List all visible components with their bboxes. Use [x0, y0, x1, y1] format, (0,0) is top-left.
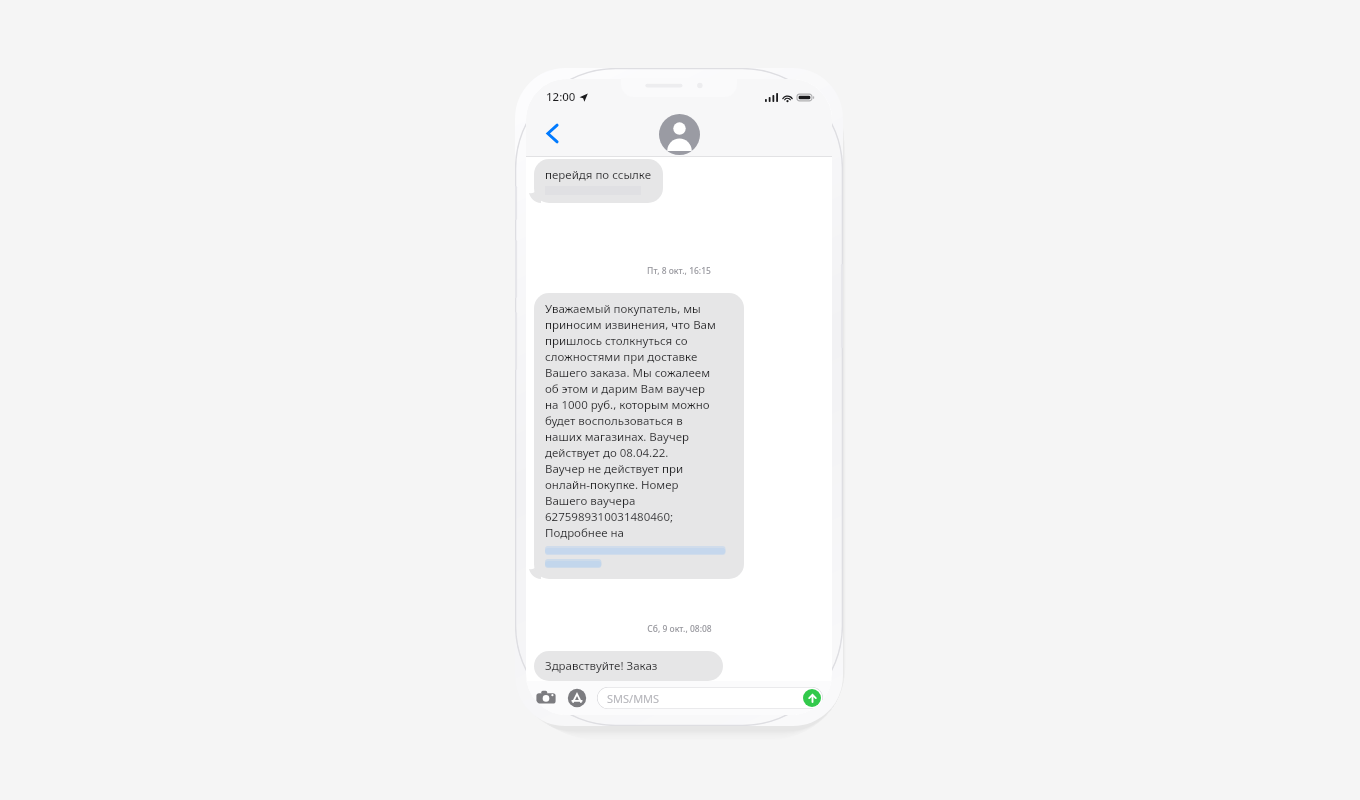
- button[interactable]: Уважаемый покупатель, мы приносим извине…: [545, 301, 733, 571]
- staticText: SMS/MMS: [607, 691, 660, 706]
- button[interactable]: SMS/MMS: [597, 687, 823, 709]
- button[interactable]: Camera: [535, 687, 557, 709]
- button[interactable]: Здравствуйте! Заказ: [545, 658, 712, 674]
- staticText: Здравствуйте! Заказ: [545, 658, 658, 674]
- staticText: Пт, 8 окт., 16:15: [647, 265, 711, 277]
- button[interactable]: Contact: [659, 114, 700, 155]
- staticText: Уважаемый покупатель, мы приносим извине…: [545, 301, 716, 541]
- button[interactable]: App Store: [566, 687, 588, 709]
- button[interactable]: Send: [803, 689, 821, 707]
- staticText: перейдя по ссылке: [545, 167, 652, 183]
- button[interactable]: перейдя по ссылке: [545, 167, 652, 195]
- staticText: Сб, 9 окт., 08:08: [647, 623, 712, 635]
- button[interactable]: Back: [536, 117, 568, 149]
- staticText: 12:00: [546, 89, 576, 105]
